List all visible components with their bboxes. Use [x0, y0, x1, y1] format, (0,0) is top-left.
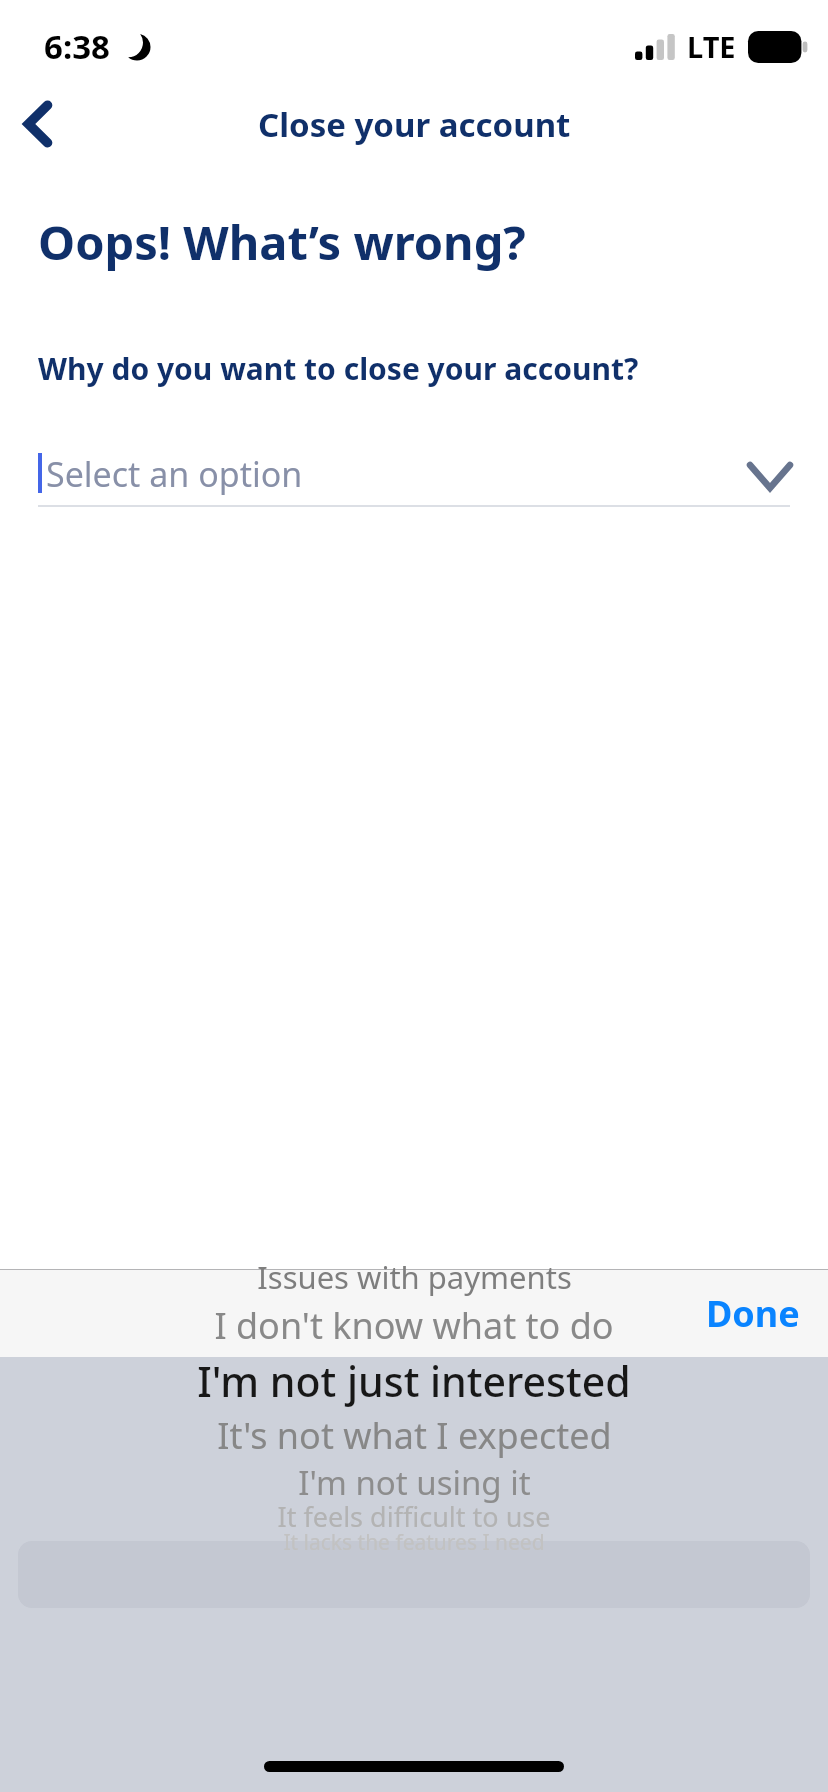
staticText: I don't know what to do — [214, 1301, 614, 1350]
staticText: I'm not just interested — [197, 1353, 631, 1409]
staticText: It feels difficult to use — [277, 1498, 551, 1535]
staticText: LTE — [687, 27, 736, 66]
button[interactable]: Back — [0, 88, 76, 160]
button[interactable]: Done — [678, 1271, 828, 1356]
button[interactable]: Issues with payments — [0, 1247, 828, 1307]
staticText: 6:38 — [44, 24, 110, 69]
staticText: Close your account — [258, 102, 571, 147]
button[interactable]: I don't know what to do — [0, 1295, 828, 1355]
staticText: Issues with payments — [257, 1256, 572, 1298]
button[interactable]: It feels difficult to use — [0, 1486, 828, 1546]
staticText: I'm not using it — [298, 1460, 531, 1505]
staticText: It lacks the features I need — [283, 1528, 545, 1557]
button[interactable]: I'm not just interested — [0, 1351, 828, 1411]
staticText: Select an option — [46, 451, 303, 497]
staticText: It's not what I expected — [217, 1411, 612, 1460]
staticText: Oops! What’s wrong? — [38, 210, 526, 274]
button[interactable]: I'm not using it — [0, 1452, 828, 1512]
staticText: Done — [706, 1289, 800, 1338]
staticText: Why do you want to close your account? — [38, 348, 639, 389]
button[interactable]: Select an option — [38, 441, 790, 507]
button[interactable]: It lacks the features I need — [0, 1512, 828, 1572]
button[interactable]: It's not what I expected — [0, 1405, 828, 1465]
